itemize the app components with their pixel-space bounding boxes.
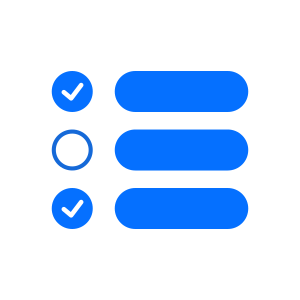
button[interactable]: First task, completed [52, 71, 248, 112]
button[interactable]: Third task, completed [52, 188, 248, 229]
button[interactable]: Second task, not completed [52, 129, 248, 170]
